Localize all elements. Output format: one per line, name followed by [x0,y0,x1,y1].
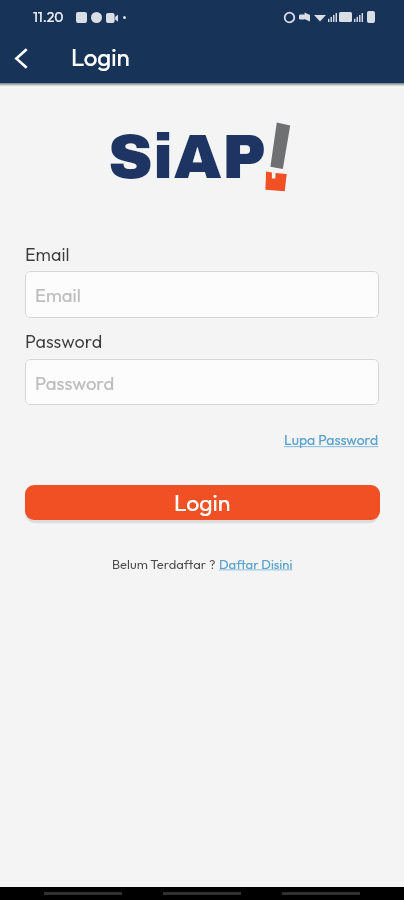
staticText: Email [35,283,81,306]
staticText: Password [35,371,115,394]
staticText: SiAP [108,124,267,191]
staticText: Login [71,42,130,72]
staticText: 11.20 [33,8,64,26]
staticText: Login [174,488,231,517]
button[interactable]: Login [25,485,380,520]
button[interactable]: Daftar Disini [219,556,293,572]
button[interactable]: Back [0,34,43,83]
staticText: Password [25,330,103,353]
button[interactable]: Lupa Password [284,431,379,449]
button[interactable]: Password [25,359,379,405]
staticText: Email [25,243,70,266]
button[interactable]: Email [25,271,379,318]
staticText: Belum Terdaftar ? [112,556,219,572]
